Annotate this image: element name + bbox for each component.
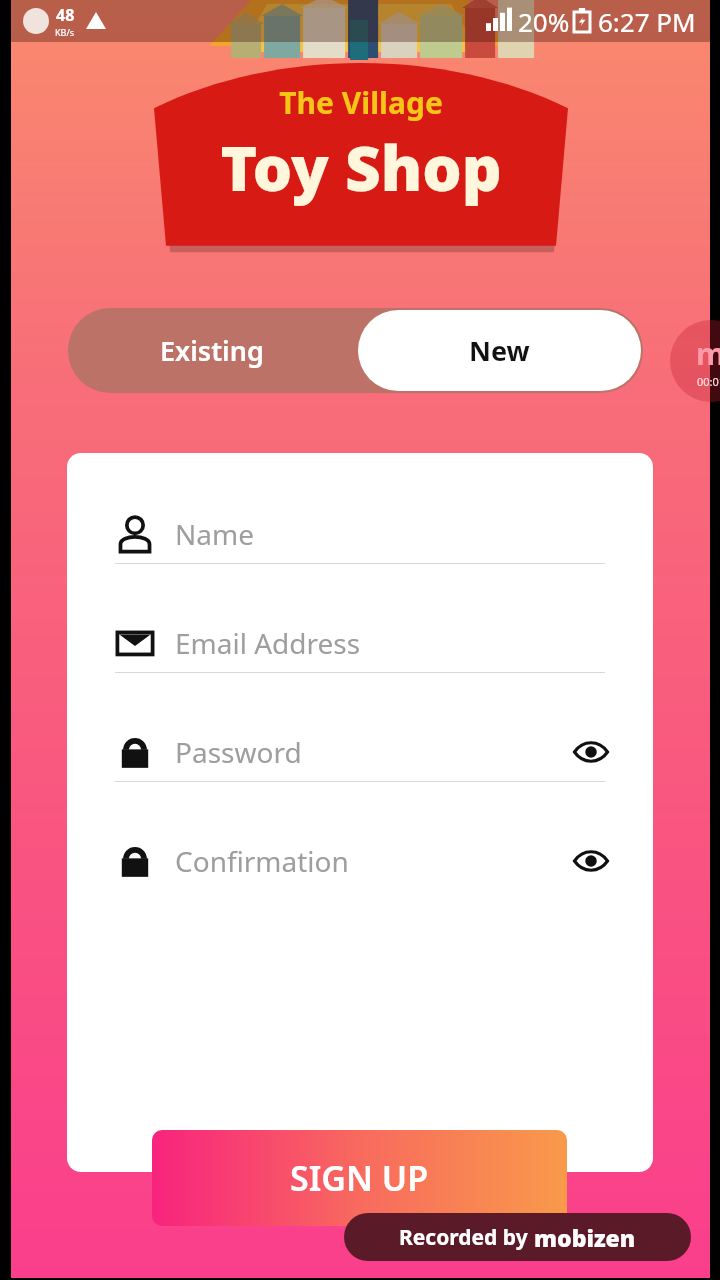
staticText: Existing	[160, 332, 264, 369]
staticText: The Village	[279, 82, 443, 123]
staticText: KB/s	[55, 26, 75, 38]
button[interactable]: Show password	[573, 734, 609, 770]
button[interactable]: Password	[67, 723, 653, 781]
staticText: Name	[175, 515, 609, 553]
button[interactable]: Email Address	[67, 614, 653, 672]
button[interactable]: Existing	[68, 308, 356, 393]
staticText: 20%	[518, 4, 570, 39]
button[interactable]: Mobizen recorder	[670, 320, 720, 402]
staticText: Toy Shop	[220, 125, 502, 209]
button[interactable]: Show password	[573, 843, 609, 879]
staticText: mobizen	[534, 1222, 636, 1253]
button[interactable]: SIGN UP	[152, 1130, 567, 1226]
staticText: m	[696, 333, 720, 374]
staticText: Email Address	[175, 624, 609, 662]
button[interactable]: New	[358, 310, 641, 391]
staticText: 6:27 PM	[598, 4, 696, 39]
staticText: Confirmation	[175, 842, 573, 880]
staticText: Recorded by	[399, 1223, 534, 1252]
staticText: New	[469, 332, 530, 369]
button[interactable]: Confirmation	[67, 832, 653, 890]
staticText: 00:01	[697, 374, 720, 389]
button[interactable]: Name	[67, 505, 653, 563]
staticText: 48	[56, 4, 75, 26]
staticText: Password	[175, 733, 573, 771]
staticText: SIGN UP	[290, 1155, 429, 1201]
